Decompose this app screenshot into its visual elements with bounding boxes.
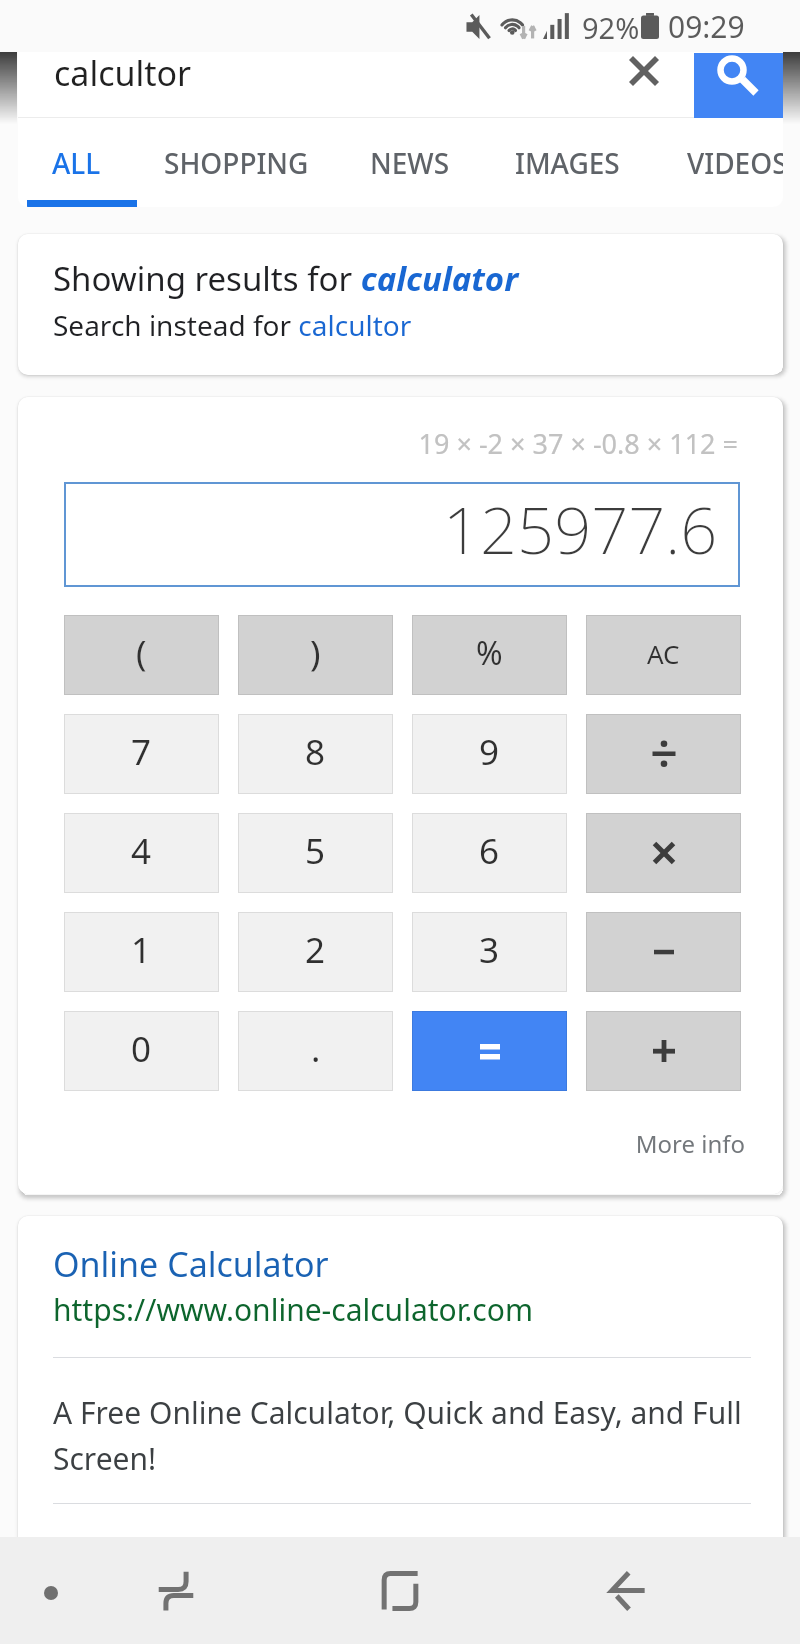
button[interactable]: IMAGES — [482, 122, 652, 204]
button[interactable]: Recent apps — [132, 1547, 220, 1635]
button[interactable]: 5 — [238, 813, 393, 893]
staticText: Showing results for calculator — [53, 256, 519, 301]
staticText: 8 — [305, 728, 326, 776]
staticText: 2 — [305, 926, 326, 974]
staticText: 5 — [305, 827, 326, 875]
staticText: 4 — [131, 827, 152, 875]
button[interactable]: NEWS — [325, 122, 495, 204]
staticText: 3 — [479, 926, 500, 974]
button[interactable]: 6 — [412, 813, 567, 893]
staticText: SHOPPING — [164, 144, 309, 182]
button[interactable]: Search — [694, 53, 783, 118]
button[interactable]: Clear query — [610, 52, 678, 104]
staticText: calcultor — [54, 52, 192, 96]
staticText: ( — [136, 629, 147, 677]
staticText: 92% — [582, 8, 640, 47]
button[interactable]: 8 — [238, 714, 393, 794]
staticText: 9 — [479, 728, 500, 776]
button[interactable]: 4 — [64, 813, 219, 893]
button[interactable]: 1 — [64, 912, 219, 992]
button[interactable]: ) — [238, 615, 393, 695]
button[interactable]: 0 — [64, 1011, 219, 1091]
staticText: A Free Online Calculator, Quick and Easy… — [53, 1392, 755, 1479]
button[interactable]: Plus — [586, 1011, 741, 1091]
staticText: https://www.online-calculator.com — [53, 1289, 533, 1330]
staticText: 0 — [131, 1025, 152, 1073]
staticText: 1 — [131, 926, 152, 974]
staticText: AC — [647, 636, 680, 671]
button[interactable]: SHOPPING — [151, 122, 321, 204]
button[interactable]: Multiply — [586, 813, 741, 893]
staticText: ) — [310, 629, 321, 677]
staticText: 09:29 — [668, 6, 745, 47]
button[interactable]: . — [238, 1011, 393, 1091]
button[interactable]: % — [412, 615, 567, 695]
button[interactable]: Equals — [412, 1011, 567, 1091]
button[interactable]: More info — [18, 1127, 745, 1160]
button[interactable]: Divide — [586, 714, 741, 794]
button[interactable]: VIDEOS — [652, 122, 783, 204]
staticText: 6 — [479, 827, 500, 875]
button[interactable]: 7 — [64, 714, 219, 794]
button[interactable]: Home — [356, 1547, 444, 1635]
button[interactable]: 3 — [412, 912, 567, 992]
button[interactable]: Back — [584, 1547, 672, 1635]
button[interactable]: AC — [586, 615, 741, 695]
button[interactable]: Online Calculator — [53, 1241, 329, 1287]
staticText: 19 × -2 × 37 × -0.8 × 112 = — [18, 425, 738, 462]
staticText: % — [476, 631, 503, 675]
staticText: NEWS — [370, 144, 450, 182]
staticText: 7 — [131, 728, 152, 776]
staticText: ALL — [52, 144, 101, 182]
staticText: . — [311, 1025, 321, 1073]
staticText: VIDEOS — [687, 144, 783, 182]
button[interactable]: ALL — [18, 122, 161, 204]
staticText: IMAGES — [515, 144, 620, 182]
staticText: 125977.6 — [443, 485, 718, 574]
button[interactable]: Search instead for calcultor — [53, 306, 412, 344]
button[interactable]: ( — [64, 615, 219, 695]
button[interactable]: 2 — [238, 912, 393, 992]
button[interactable]: 9 — [412, 714, 567, 794]
button[interactable]: Minus — [586, 912, 741, 992]
